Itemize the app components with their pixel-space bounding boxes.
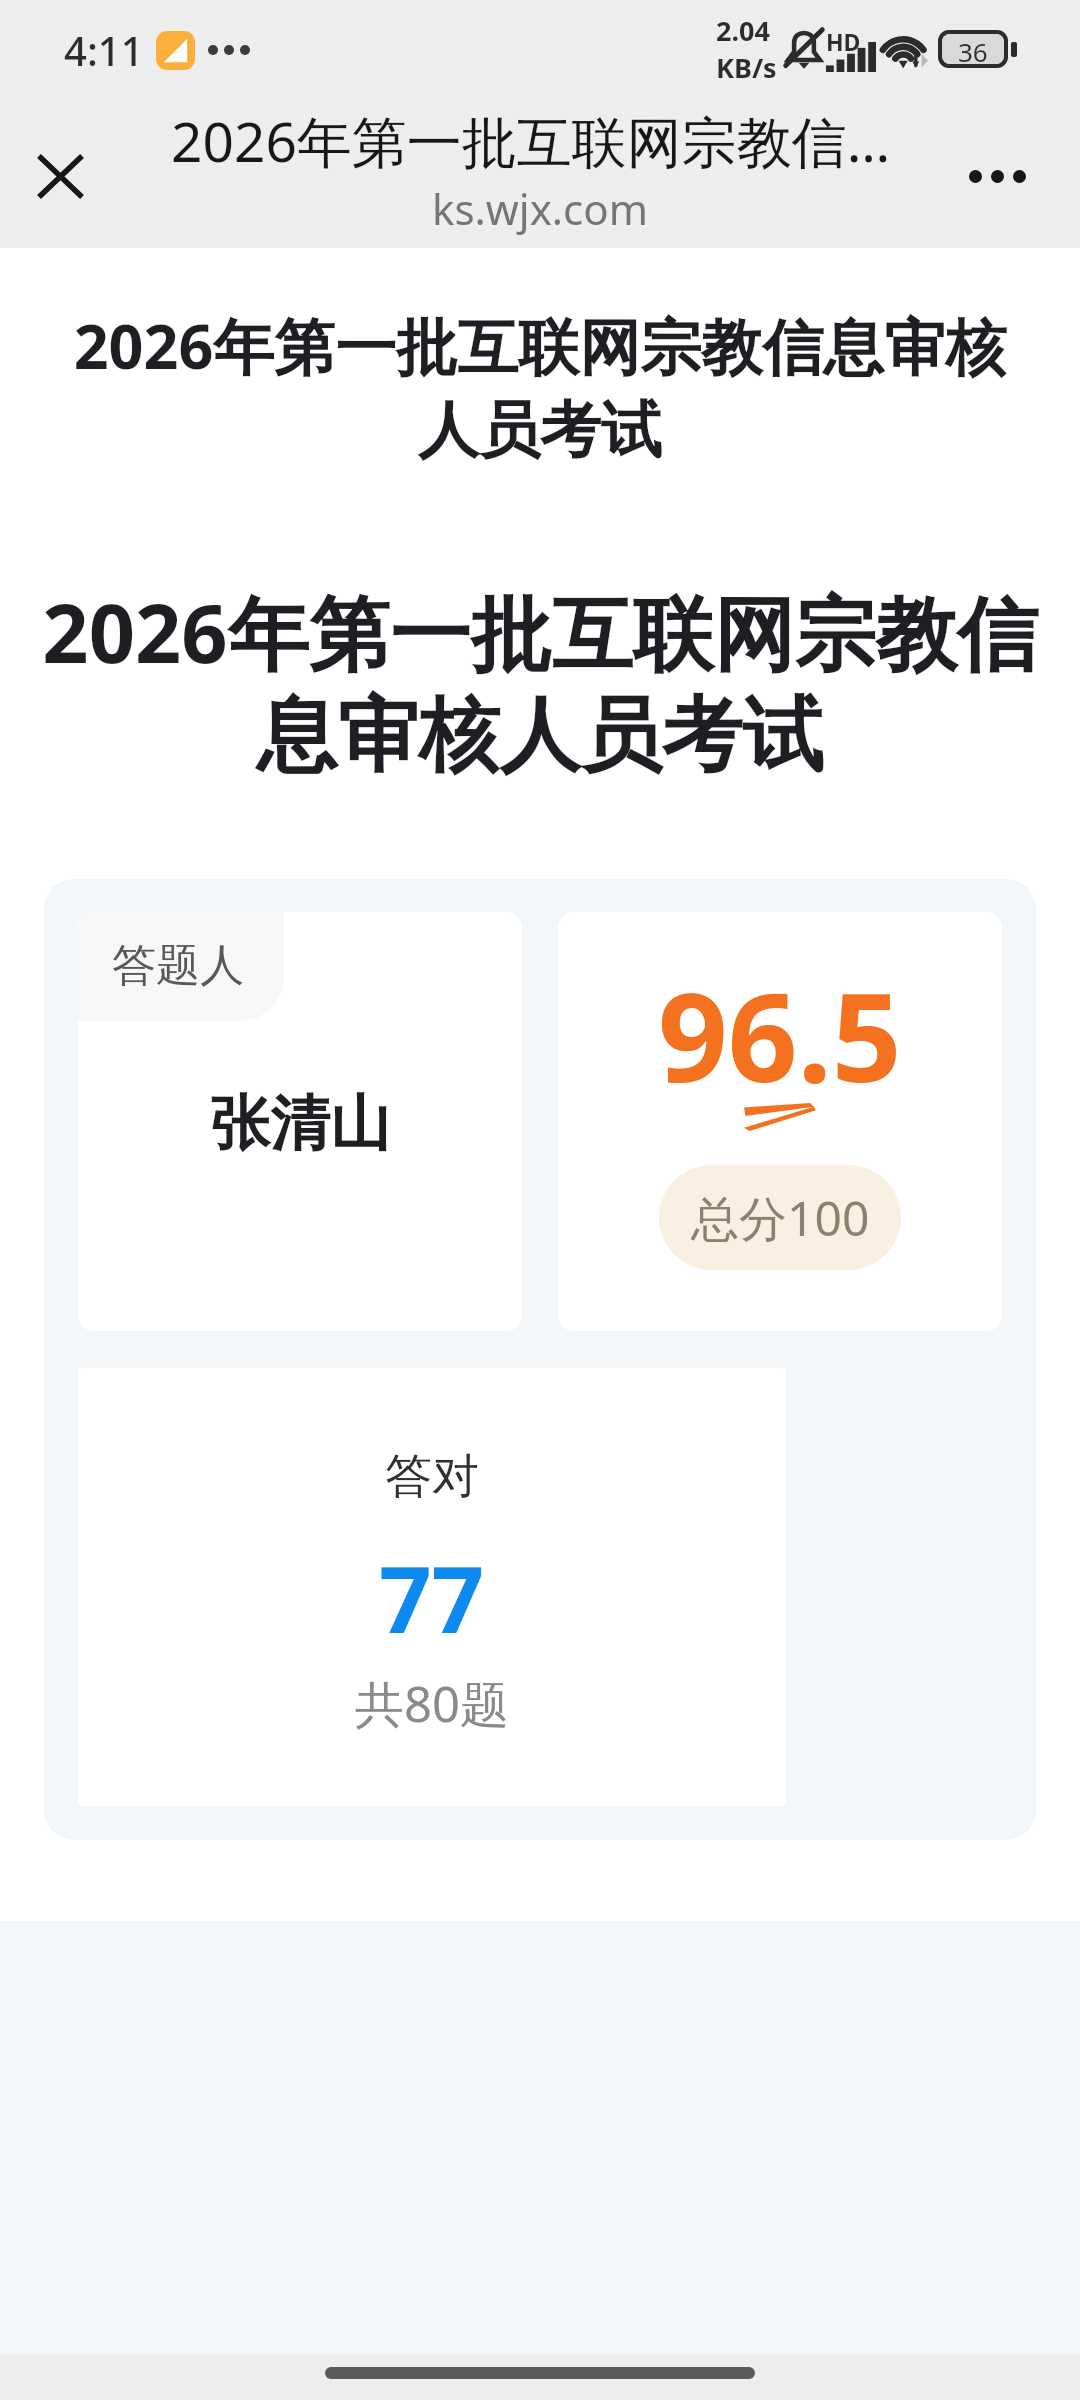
button[interactable]: Close: [20, 133, 100, 213]
staticText: 张清山: [210, 1086, 390, 1162]
staticText: 2026年第一批互联网宗教信…: [171, 103, 891, 178]
staticText: 总分100: [691, 1185, 870, 1251]
staticText: 答题人: [112, 938, 244, 993]
staticText: HD: [826, 26, 861, 57]
staticText: ks.wjx.com: [432, 180, 648, 237]
staticText: 2026年第一批互联网宗教信息审核人员考试: [16, 576, 1064, 787]
staticText: 共80题: [355, 1670, 510, 1737]
staticText: 答对: [385, 1447, 479, 1506]
staticText: 2026年第一批互联网宗教信息审核人员考试: [44, 304, 1036, 469]
button[interactable]: More options: [952, 131, 1042, 221]
staticText: 36: [958, 34, 988, 64]
staticText: 4:11: [64, 23, 144, 77]
staticText: KB/s: [716, 49, 777, 86]
staticText: 77: [379, 1535, 485, 1660]
staticText: 96.5: [658, 952, 902, 1118]
staticText: 2.04: [716, 12, 770, 49]
